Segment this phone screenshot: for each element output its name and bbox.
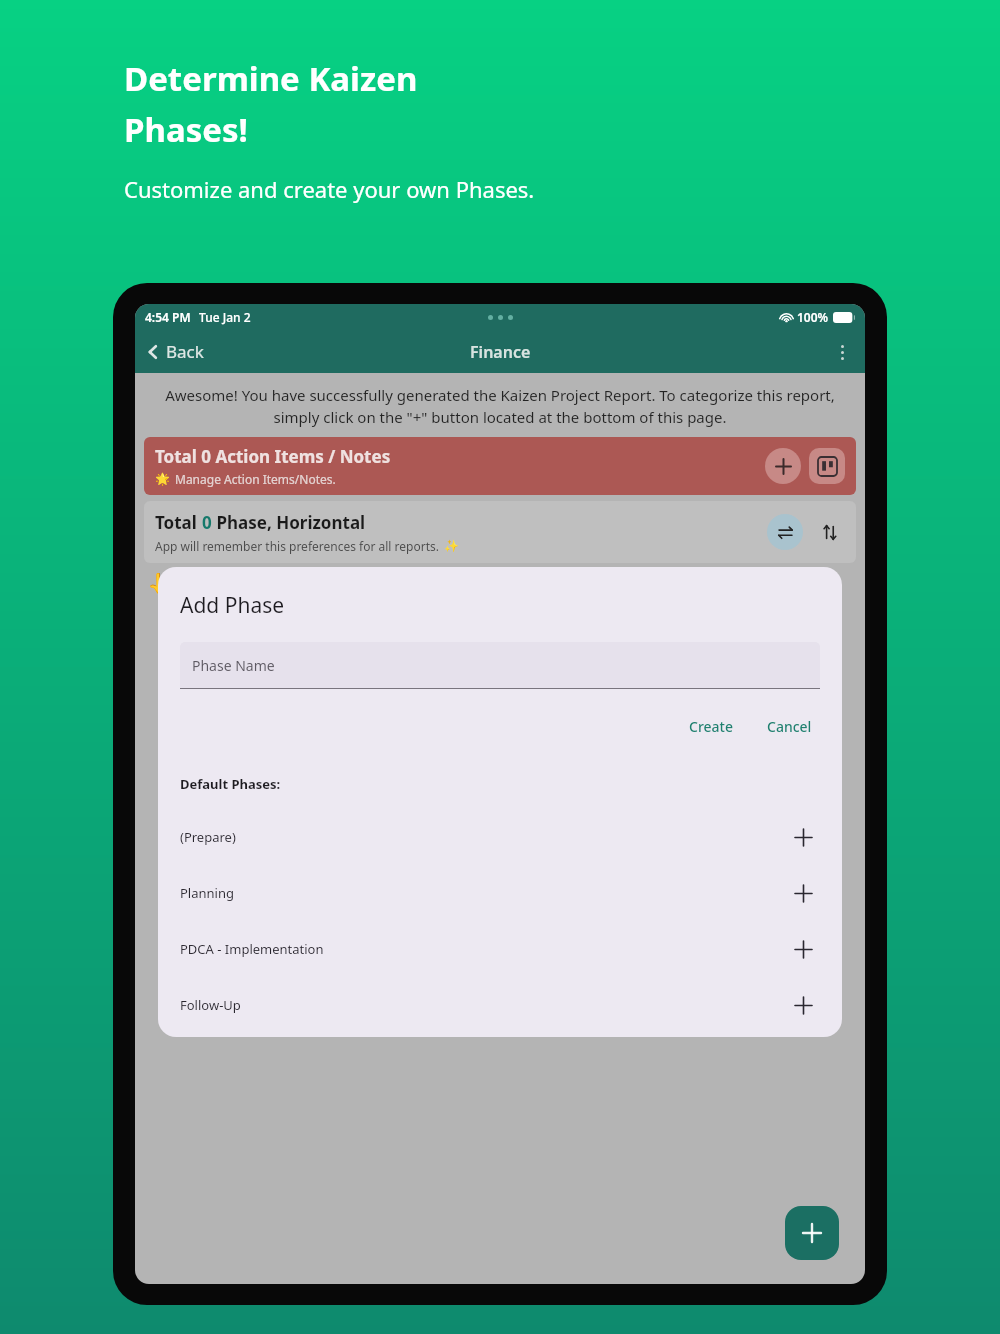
button[interactable]: Add Planning: [786, 876, 820, 910]
staticText: App will remember this preferences for a…: [155, 538, 439, 554]
button[interactable]: Create: [681, 712, 741, 741]
staticText: 👆: [147, 572, 175, 598]
staticText: ✨: [444, 539, 459, 553]
button[interactable]: Total: [144, 501, 856, 563]
staticText: Phases!: [124, 107, 248, 152]
button[interactable]: Cancel: [759, 712, 820, 741]
staticText: Customize and create your own Phases.: [124, 174, 535, 204]
staticText: Total 0 Action Items / Notes: [155, 445, 391, 468]
staticText: PDCA - Implementation: [180, 940, 786, 958]
staticText: 🌟: [155, 472, 170, 486]
button[interactable]: Sort: [813, 516, 845, 548]
button[interactable]: Add PDCA - Implementation: [786, 932, 820, 966]
staticText: Planning: [180, 884, 786, 902]
staticText: (Prepare): [180, 828, 786, 846]
button[interactable]: More options: [825, 335, 859, 369]
button[interactable]: Add (Prepare): [786, 820, 820, 854]
button[interactable]: Total 0 Action Items / Notes: [144, 437, 856, 495]
button[interactable]: Follow-Up: [180, 977, 820, 1033]
staticText: Default Phases:: [180, 775, 281, 793]
staticText: Manage Action Items/Notes.: [175, 471, 336, 487]
staticText: 0: [202, 511, 212, 534]
staticText: Follow-Up: [180, 996, 786, 1014]
staticText: 100%: [797, 309, 829, 325]
button[interactable]: Phase Name: [180, 642, 820, 688]
button[interactable]: Board view: [809, 448, 845, 484]
staticText: Total: [155, 511, 202, 534]
staticText: 4:54 PM: [145, 309, 191, 325]
staticText: Phase, Horizontal: [212, 511, 366, 534]
button[interactable]: Back: [135, 334, 214, 369]
button[interactable]: Add item: [765, 448, 801, 484]
button[interactable]: (Prepare): [180, 809, 820, 865]
staticText: Add Phase: [180, 591, 285, 620]
staticText: Create: [689, 717, 733, 736]
button[interactable]: Toggle orientation: [767, 514, 803, 550]
staticText: Tue Jan 2: [199, 309, 251, 325]
staticText: Back: [166, 340, 204, 363]
staticText: Cancel: [767, 717, 812, 736]
button[interactable]: Add Follow-Up: [786, 988, 820, 1022]
staticText: Determine Kaizen: [124, 56, 418, 101]
staticText: Awesome! You have successfully generated…: [149, 385, 851, 428]
staticText: Phase Name: [192, 656, 275, 675]
button[interactable]: Add: [785, 1206, 839, 1260]
button[interactable]: Planning: [180, 865, 820, 921]
staticText: Finance: [470, 341, 531, 363]
button[interactable]: PDCA - Implementation: [180, 921, 820, 977]
